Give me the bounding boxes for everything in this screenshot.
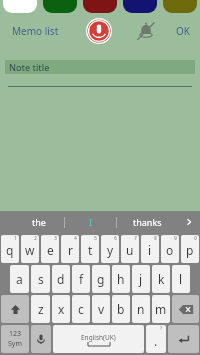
- staticText: ?: [160, 325, 163, 332]
- staticText: k: [158, 271, 165, 287]
- button[interactable]: Backspace: [172, 295, 199, 323]
- staticText: h: [117, 271, 125, 287]
- staticText: s: [38, 271, 44, 287]
- button[interactable]: Shift: [1, 295, 29, 323]
- staticText: m: [155, 301, 167, 317]
- button[interactable]: Voice input: [31, 325, 51, 353]
- button[interactable]: 123: [1, 325, 29, 353]
- button[interactable]: English(UK): [53, 325, 144, 353]
- staticText: n: [137, 301, 145, 317]
- button[interactable]: h: [112, 265, 130, 293]
- button[interactable]: 3: [41, 235, 59, 263]
- button[interactable]: the: [14, 211, 64, 233]
- staticText: Sym: [8, 339, 22, 349]
- button[interactable]: thanks: [117, 211, 178, 233]
- staticText: u: [126, 242, 134, 258]
- staticText: a: [16, 271, 23, 287]
- staticText: o: [166, 242, 174, 258]
- staticText: f: [79, 271, 84, 287]
- staticText: I: [89, 216, 93, 228]
- staticText: x: [58, 301, 65, 317]
- staticText: v: [98, 301, 105, 317]
- staticText: 3: [54, 235, 57, 242]
- button[interactable]: Record voice memo: [86, 18, 112, 44]
- button[interactable]: 2: [21, 235, 39, 263]
- button[interactable]: v: [92, 295, 110, 323]
- button[interactable]: [3, 0, 37, 13]
- staticText: q: [6, 242, 14, 258]
- staticText: the: [32, 216, 46, 228]
- staticText: t: [88, 242, 93, 258]
- button[interactable]: x: [52, 295, 70, 323]
- button[interactable]: More suggestions: [178, 211, 200, 233]
- staticText: 9: [174, 235, 177, 242]
- button[interactable]: [123, 0, 157, 13]
- button[interactable]: ?: [146, 325, 166, 353]
- staticText: 7: [134, 235, 137, 242]
- staticText: b: [117, 301, 125, 317]
- button[interactable]: Enter: [168, 325, 199, 353]
- button[interactable]: a: [10, 265, 29, 293]
- staticText: OK: [176, 24, 190, 38]
- button[interactable]: 5: [81, 235, 99, 263]
- staticText: 2: [34, 235, 37, 242]
- staticText: .: [154, 333, 158, 349]
- button[interactable]: s: [31, 265, 50, 293]
- button[interactable]: g: [92, 265, 110, 293]
- staticText: thanks: [133, 216, 162, 228]
- button[interactable]: I: [65, 211, 116, 233]
- staticText: 6: [114, 235, 117, 242]
- button[interactable]: m: [152, 295, 170, 323]
- button[interactable]: [43, 0, 77, 13]
- staticText: e: [47, 242, 54, 258]
- button[interactable]: 9: [161, 235, 179, 263]
- button[interactable]: z: [31, 295, 50, 323]
- staticText: 0: [194, 235, 197, 242]
- button[interactable]: OK: [172, 20, 194, 42]
- staticText: z: [38, 301, 44, 317]
- staticText: w: [25, 242, 35, 258]
- staticText: r: [68, 242, 73, 258]
- staticText: 4: [74, 235, 77, 242]
- button[interactable]: Memo list: [8, 20, 63, 42]
- button[interactable]: [163, 0, 197, 13]
- button[interactable]: l: [172, 265, 190, 293]
- button[interactable]: [83, 0, 117, 13]
- staticText: g: [97, 271, 105, 287]
- button[interactable]: Reminder off: [134, 19, 158, 43]
- staticText: i: [148, 242, 152, 258]
- button[interactable]: 6: [101, 235, 119, 263]
- staticText: Memo list: [12, 24, 59, 38]
- staticText: Note title: [9, 61, 50, 73]
- button[interactable]: 7: [121, 235, 139, 263]
- staticText: 1: [14, 235, 17, 242]
- button[interactable]: 0: [181, 235, 199, 263]
- button[interactable]: f: [72, 265, 90, 293]
- button[interactable]: d: [52, 265, 70, 293]
- button[interactable]: c: [72, 295, 90, 323]
- staticText: p: [186, 242, 194, 258]
- staticText: 123: [9, 329, 22, 339]
- staticText: c: [78, 301, 84, 317]
- staticText: j: [139, 271, 143, 287]
- button[interactable]: n: [132, 295, 150, 323]
- staticText: 8: [154, 235, 157, 242]
- button[interactable]: 8: [141, 235, 159, 263]
- staticText: 5: [94, 235, 97, 242]
- button[interactable]: Note title: [5, 60, 195, 74]
- button[interactable]: k: [152, 265, 170, 293]
- button[interactable]: 4: [61, 235, 79, 263]
- staticText: d: [57, 271, 65, 287]
- button[interactable]: b: [112, 295, 130, 323]
- staticText: y: [107, 242, 114, 258]
- button[interactable]: 1: [1, 235, 19, 263]
- staticText: English(UK): [81, 333, 116, 342]
- button[interactable]: j: [132, 265, 150, 293]
- staticText: l: [179, 271, 183, 287]
